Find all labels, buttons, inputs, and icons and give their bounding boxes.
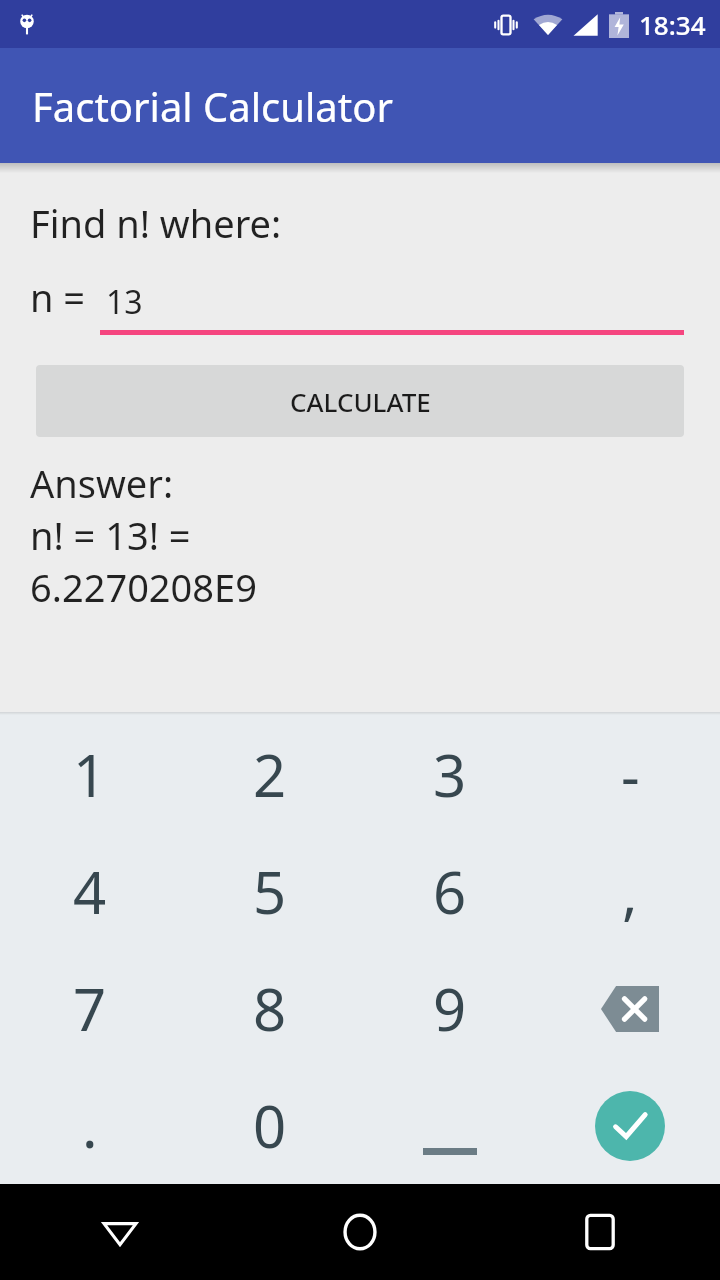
- staticText: n =: [30, 271, 86, 323]
- staticText: 18:34: [639, 7, 706, 42]
- staticText: 8: [253, 969, 287, 1048]
- button[interactable]: Backspace: [540, 950, 720, 1067]
- staticText: 0: [253, 1086, 287, 1165]
- staticText: Find n! where:: [30, 197, 282, 249]
- button[interactable]: Space: [360, 1067, 540, 1184]
- button[interactable]: 3: [360, 715, 540, 833]
- button[interactable]: 6: [360, 833, 540, 950]
- staticText: -: [621, 735, 640, 814]
- staticText: Answer:: [30, 457, 174, 509]
- button[interactable]: ,: [540, 833, 720, 950]
- button[interactable]: 8: [180, 950, 360, 1067]
- button[interactable]: Recents: [480, 1184, 720, 1280]
- button[interactable]: 9: [360, 950, 540, 1067]
- staticText: n! = 13! =: [30, 509, 191, 561]
- button[interactable]: .: [0, 1067, 180, 1184]
- button[interactable]: 7: [0, 950, 180, 1067]
- button[interactable]: 1: [0, 715, 180, 833]
- staticText: 1: [73, 735, 107, 814]
- button[interactable]: -: [540, 715, 720, 833]
- staticText: 6.2270208E9: [30, 561, 257, 613]
- staticText: 7: [73, 969, 107, 1048]
- staticText: 5: [253, 852, 287, 931]
- staticText: 6: [433, 852, 467, 931]
- staticText: .: [82, 1086, 98, 1165]
- staticText: 3: [433, 735, 467, 814]
- button[interactable]: 0: [180, 1067, 360, 1184]
- button[interactable]: CALCULATE: [36, 365, 684, 437]
- button[interactable]: 2: [180, 715, 360, 833]
- staticText: 4: [73, 852, 107, 931]
- staticText: CALCULATE: [290, 384, 431, 419]
- staticText: 2: [253, 735, 287, 814]
- button[interactable]: Home: [240, 1184, 480, 1280]
- button[interactable]: 5: [180, 833, 360, 950]
- staticText: ,: [622, 852, 638, 931]
- staticText: Factorial Calculator: [32, 79, 393, 133]
- staticText: 13: [106, 280, 143, 324]
- staticText: 9: [433, 969, 467, 1048]
- button[interactable]: Done: [540, 1067, 720, 1184]
- button[interactable]: 4: [0, 833, 180, 950]
- button[interactable]: Back: [0, 1184, 240, 1280]
